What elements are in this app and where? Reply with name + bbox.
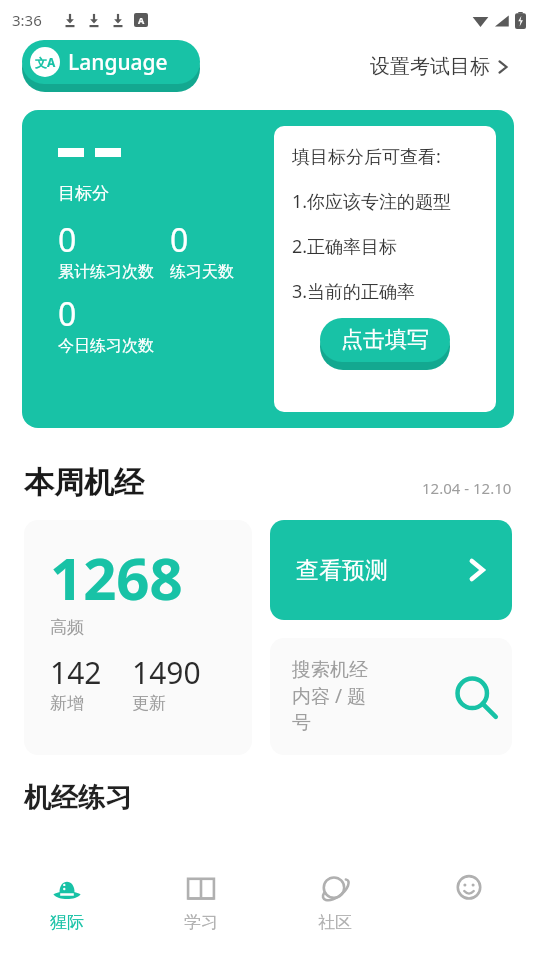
button[interactable]: 设置考试目标 bbox=[366, 48, 514, 85]
staticText: 填目标分后可查看: bbox=[292, 144, 441, 169]
staticText: 12.04 - 12.10 bbox=[422, 478, 512, 498]
staticText: 累计练习次数 bbox=[58, 262, 154, 282]
button[interactable]: 搜索机经内容 / 题号 bbox=[270, 638, 512, 755]
staticText: 1268 bbox=[50, 538, 183, 617]
staticText: 142 bbox=[50, 652, 102, 693]
staticText: 搜索机经内容 / 题号 bbox=[292, 658, 384, 735]
button[interactable]: Profile bbox=[402, 858, 536, 954]
staticText: 今日练习次数 bbox=[58, 336, 154, 356]
staticText: 目标分 bbox=[58, 183, 109, 204]
staticText: A bbox=[138, 14, 145, 26]
button[interactable]: 文A bbox=[22, 40, 200, 84]
staticText: 本周机经 bbox=[24, 464, 144, 502]
staticText: 3.当前的正确率 bbox=[292, 279, 416, 304]
button[interactable]: 学习 bbox=[134, 858, 268, 954]
button[interactable]: 目标分 bbox=[22, 110, 514, 428]
staticText: 猩际 bbox=[50, 912, 84, 933]
other: Search bbox=[452, 674, 498, 720]
staticText: 更新 bbox=[132, 693, 166, 714]
staticText: 学习 bbox=[184, 912, 218, 933]
staticText: 0 bbox=[58, 218, 77, 262]
staticText: 练习天数 bbox=[170, 262, 234, 282]
button[interactable]: 查看预测 bbox=[270, 520, 512, 620]
staticText: Language bbox=[68, 48, 168, 77]
button[interactable]: 社区 bbox=[268, 858, 402, 954]
staticText: 查看预测 bbox=[296, 556, 388, 585]
staticText: 新增 bbox=[50, 693, 84, 714]
button[interactable]: 点击填写 bbox=[320, 318, 450, 362]
button[interactable]: 猩际 bbox=[0, 858, 134, 954]
staticText: 3:36 bbox=[12, 10, 42, 30]
staticText: 1490 bbox=[132, 652, 201, 693]
staticText: 高频 bbox=[50, 617, 84, 638]
staticText: 2.正确率目标 bbox=[292, 234, 398, 259]
staticText: 0 bbox=[58, 292, 77, 336]
staticText: 文A bbox=[35, 54, 56, 70]
staticText: 点击填写 bbox=[341, 326, 429, 354]
staticText: 机经练习 bbox=[24, 781, 132, 815]
staticText: 社区 bbox=[318, 912, 352, 933]
button[interactable]: 1268 bbox=[24, 520, 252, 755]
staticText: 设置考试目标 bbox=[370, 54, 490, 79]
staticText: 0 bbox=[170, 218, 189, 262]
staticText: 1.你应该专注的题型 bbox=[292, 189, 452, 214]
